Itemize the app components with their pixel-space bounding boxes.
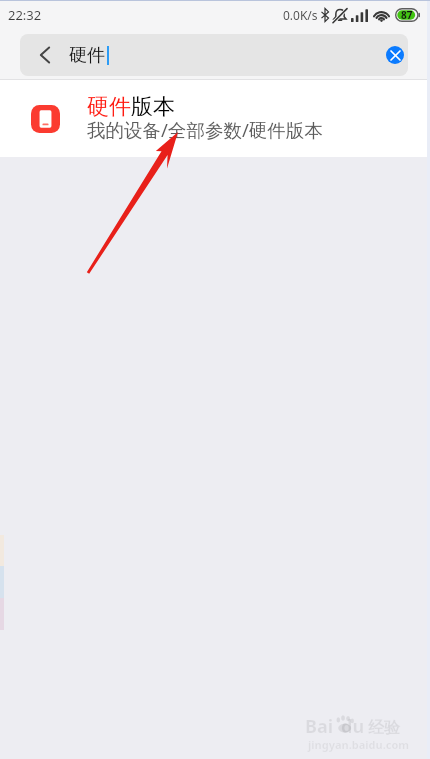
button[interactable]: 硬件版本 [0,80,430,157]
staticText: 硬件 [69,44,105,67]
staticText: 22:32 [8,6,42,24]
button[interactable]: Clear [382,42,408,68]
button[interactable]: Back [20,34,408,76]
staticText: 硬件版本 [87,93,175,121]
button[interactable]: Back [20,34,64,76]
staticText: jingyan.baidu.com [308,737,410,752]
staticText: du [341,714,365,739]
staticText: 87 [401,8,413,22]
staticText: 经验 [368,718,400,738]
staticText: 0.0K/s [283,7,318,23]
staticText: Bai [305,714,334,739]
staticText: 我的设备/全部参数/硬件版本 [87,117,323,142]
